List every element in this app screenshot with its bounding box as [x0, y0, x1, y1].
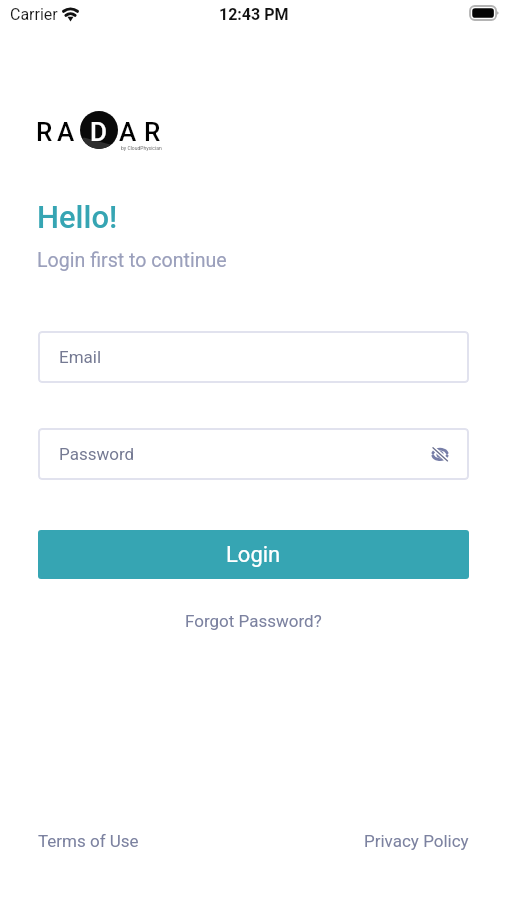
staticText: R	[36, 117, 53, 147]
button[interactable]: Terms of Use	[38, 831, 139, 851]
staticText: Terms of Use	[38, 831, 139, 851]
staticText: A	[57, 117, 75, 147]
staticText: R	[144, 117, 161, 147]
staticText: Hello!	[37, 199, 118, 235]
button[interactable]: Password	[38, 428, 469, 480]
staticText: A	[119, 117, 137, 147]
staticText: Password	[59, 444, 135, 464]
staticText: Login first to continue	[37, 249, 227, 272]
staticText: Carrier	[10, 5, 58, 24]
staticText: 12:43 PM	[219, 5, 289, 24]
button[interactable]: Show password	[425, 439, 455, 469]
staticText: Login	[226, 542, 281, 568]
button[interactable]: Forgot Password?	[175, 605, 332, 637]
staticText: by CloudPhysician	[121, 145, 162, 151]
staticText: Privacy Policy	[364, 831, 469, 851]
staticText: D	[90, 117, 107, 147]
button[interactable]: Privacy Policy	[364, 831, 469, 851]
button[interactable]: Login	[38, 530, 469, 579]
button[interactable]: Email	[38, 331, 469, 383]
staticText: Email	[59, 347, 102, 367]
staticText: Forgot Password?	[185, 611, 322, 631]
